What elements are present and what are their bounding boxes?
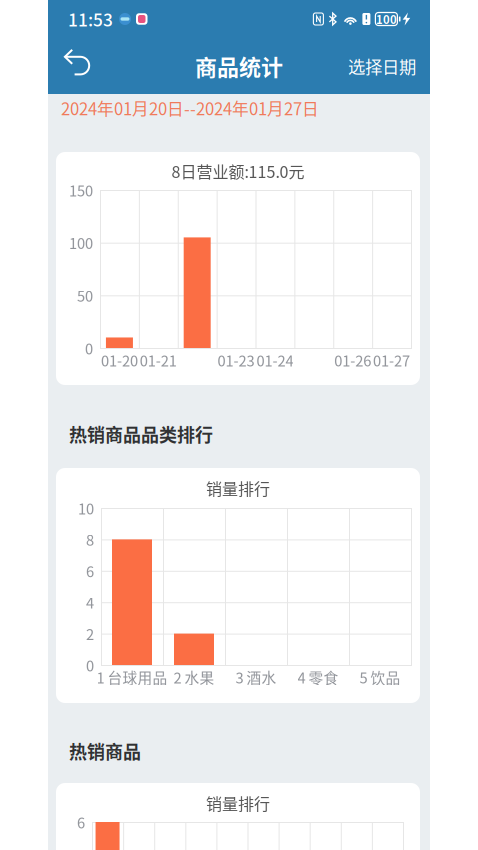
staticText: 01-26 (334, 349, 371, 371)
staticText: 0 (86, 654, 94, 676)
staticText: 8日营业额:115.0元 (171, 159, 304, 183)
button[interactable]: 返回 (52, 43, 96, 89)
staticText: 6 (77, 811, 85, 833)
staticText: 100 (376, 11, 397, 27)
staticText: 3 酒水 (235, 666, 276, 688)
staticText: 2 水果 (173, 666, 214, 688)
staticText: 选择日期 (348, 53, 416, 79)
staticText: 商品统计 (195, 50, 283, 82)
staticText: 100 (69, 232, 93, 253)
staticText: 8 (86, 529, 94, 550)
staticText: 热销商品品类排行 (69, 421, 213, 447)
staticText: 01-24 (256, 349, 293, 371)
button[interactable]: 选择日期 (338, 43, 426, 89)
staticText: 6 (86, 560, 94, 581)
staticText: 50 (77, 285, 93, 306)
staticText: 4 (86, 592, 94, 613)
staticText: 01-27 (373, 349, 410, 371)
staticText: 2024年01月20日--2024年01月27日 (61, 96, 319, 120)
staticText: 2 (86, 623, 94, 644)
staticText: 0 (85, 337, 93, 359)
staticText: 销量排行 (206, 476, 270, 500)
staticText: 150 (69, 179, 93, 201)
staticText: 01-20 (101, 349, 138, 371)
staticText: 01-21 (140, 349, 177, 371)
staticText: 销量排行 (206, 791, 270, 815)
staticText: 01-23 (218, 349, 255, 371)
staticText: 1 台球用品 (96, 666, 167, 688)
staticText: 11:53 (68, 6, 113, 32)
staticText: 10 (78, 497, 94, 519)
staticText: 热销商品 (69, 738, 141, 764)
staticText: 4 零食 (297, 666, 338, 688)
staticText: 5 饮品 (359, 666, 400, 688)
